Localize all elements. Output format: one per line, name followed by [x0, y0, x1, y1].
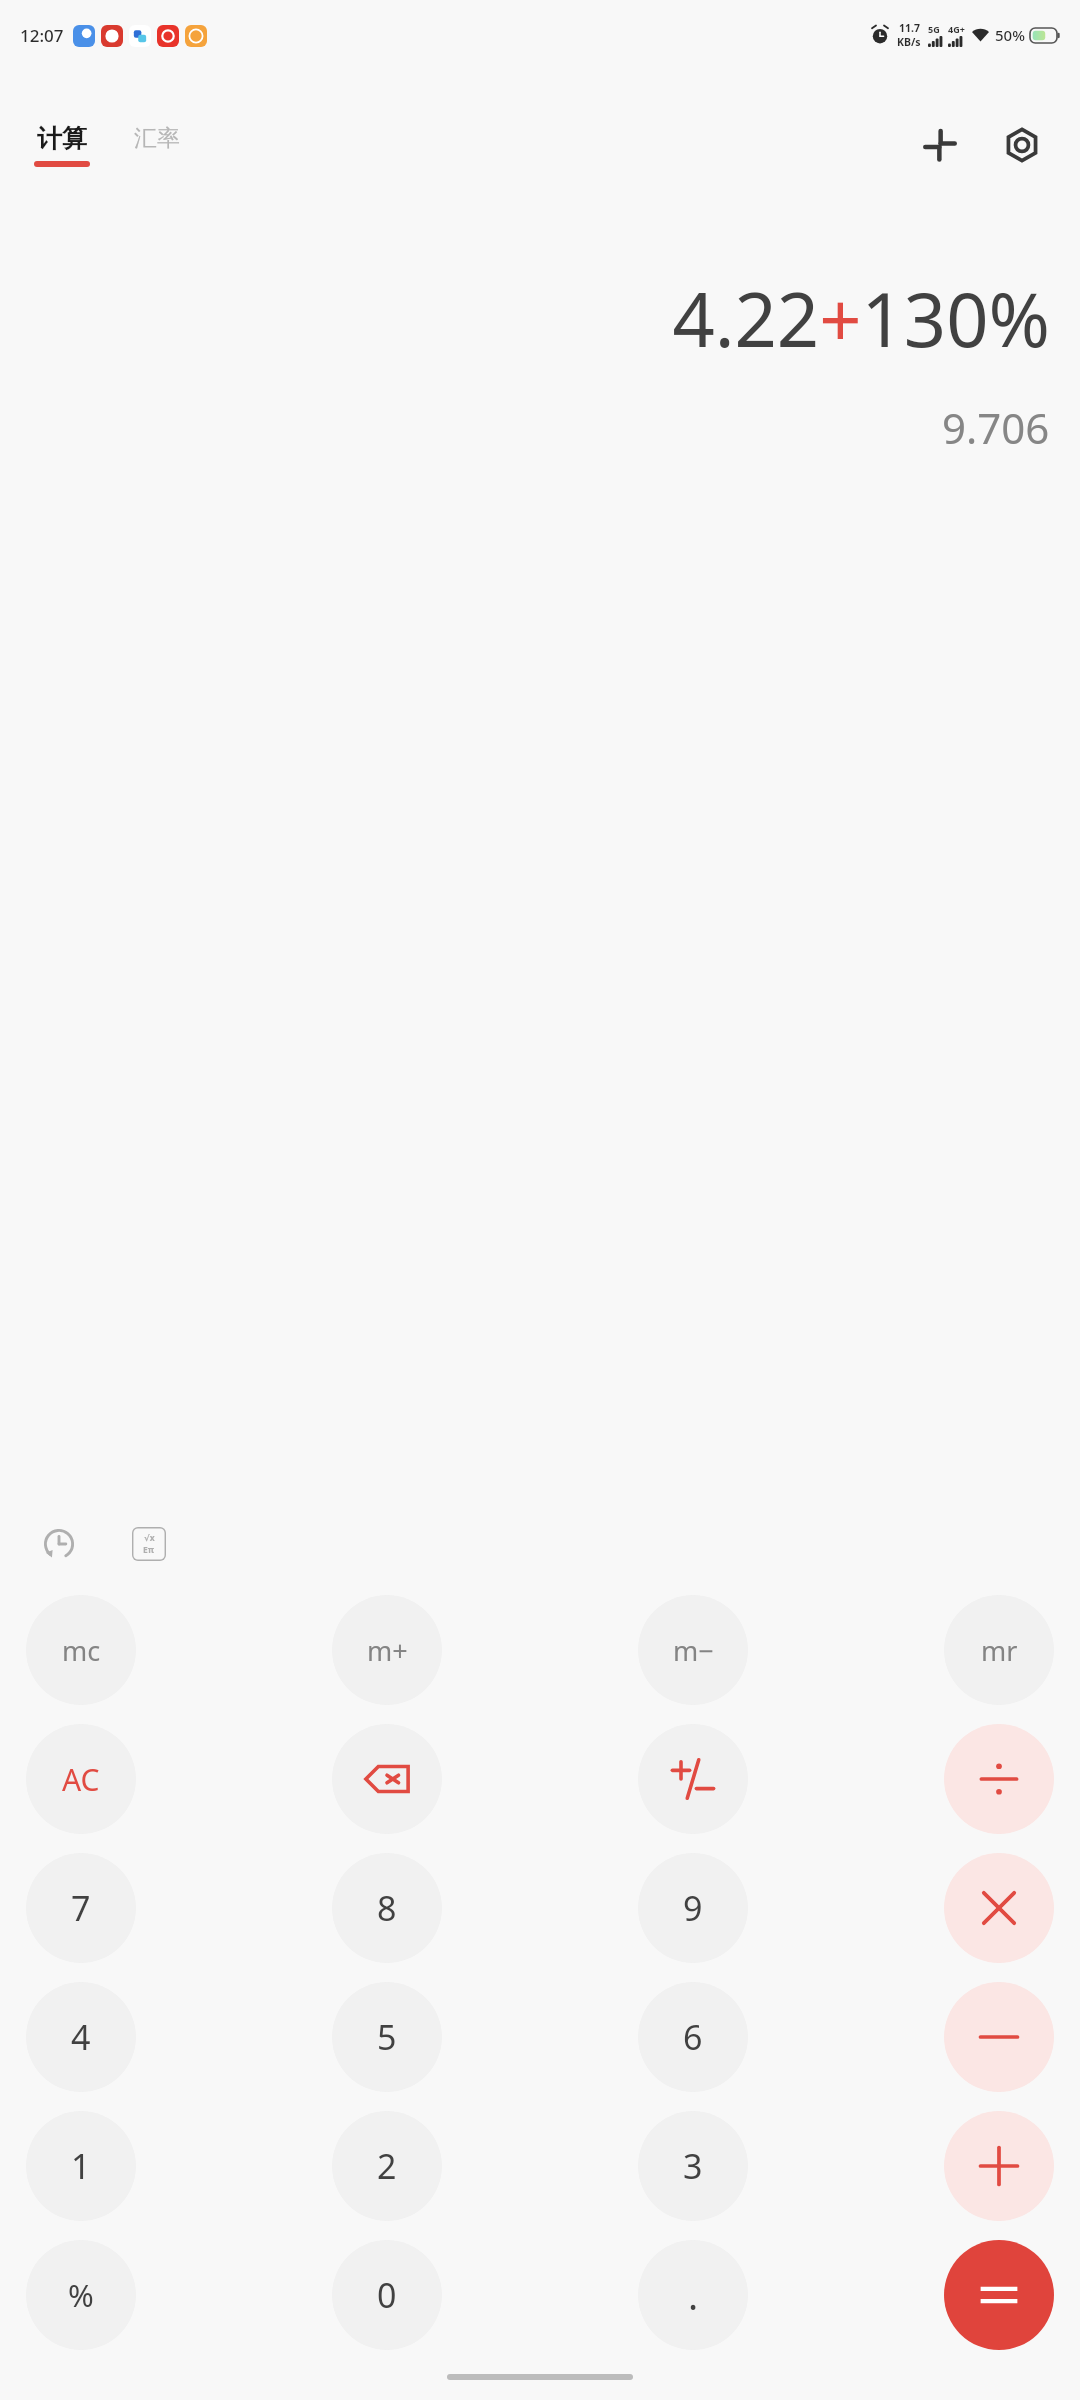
staticText: 汇率: [134, 124, 180, 153]
button[interactable]: Multiply: [944, 1853, 1054, 1963]
staticText: 3: [683, 2143, 703, 2189]
staticText: 计算: [37, 123, 87, 154]
staticText: mr: [981, 1632, 1018, 1669]
button[interactable]: 汇率: [130, 124, 184, 166]
staticText: 9.706: [942, 399, 1050, 456]
staticText: 4.22+130%: [672, 268, 1050, 369]
staticText: 1: [71, 2143, 91, 2189]
staticText: 6: [683, 2014, 703, 2060]
button[interactable]: 7: [26, 1853, 136, 1963]
button[interactable]: Collapse: [912, 117, 968, 173]
button[interactable]: 计算: [30, 123, 94, 167]
staticText: √x: [144, 1532, 155, 1544]
button[interactable]: %: [26, 2240, 136, 2350]
button[interactable]: mr: [944, 1595, 1054, 1705]
staticText: 9: [683, 1885, 703, 1931]
staticText: m−: [673, 1632, 714, 1669]
button[interactable]: m−: [638, 1595, 748, 1705]
button[interactable]: AC: [26, 1724, 136, 1834]
button[interactable]: 4: [26, 1982, 136, 2092]
staticText: 5: [377, 2014, 397, 2060]
button[interactable]: Backspace: [332, 1724, 442, 1834]
staticText: .: [688, 2269, 699, 2321]
button[interactable]: Divide: [944, 1724, 1054, 1834]
button[interactable]: 1: [26, 2111, 136, 2221]
staticText: Eπ: [143, 1544, 155, 1556]
button[interactable]: .: [638, 2240, 748, 2350]
button[interactable]: Subtract: [944, 1982, 1054, 2092]
staticText: AC: [62, 1759, 100, 1800]
button[interactable]: Equals: [944, 2240, 1054, 2350]
button[interactable]: Settings: [994, 117, 1050, 173]
button[interactable]: 8: [332, 1853, 442, 1963]
staticText: 2: [377, 2143, 397, 2189]
staticText: KB/s: [897, 35, 921, 49]
staticText: mc: [62, 1632, 101, 1669]
staticText: 8: [377, 1885, 397, 1931]
button[interactable]: 3: [638, 2111, 748, 2221]
button[interactable]: Scientific: [120, 1515, 178, 1573]
staticText: 12:07: [20, 24, 64, 47]
button[interactable]: 0: [332, 2240, 442, 2350]
staticText: 7: [71, 1885, 91, 1931]
button[interactable]: Add: [944, 2111, 1054, 2221]
staticText: m+: [367, 1632, 408, 1669]
staticText: 11.7: [899, 21, 920, 35]
button[interactable]: 9: [638, 1853, 748, 1963]
staticText: %: [68, 2274, 94, 2316]
staticText: 4: [71, 2014, 91, 2060]
staticText: 4G+: [948, 23, 965, 35]
button[interactable]: 2: [332, 2111, 442, 2221]
button[interactable]: m+: [332, 1595, 442, 1705]
staticText: 50%: [995, 25, 1025, 45]
button[interactable]: 6: [638, 1982, 748, 2092]
staticText: 0: [377, 2272, 397, 2318]
button[interactable]: Plus minus: [638, 1724, 748, 1834]
button[interactable]: History: [30, 1515, 88, 1573]
staticText: 5G: [928, 23, 940, 35]
button[interactable]: 5: [332, 1982, 442, 2092]
button[interactable]: mc: [26, 1595, 136, 1705]
